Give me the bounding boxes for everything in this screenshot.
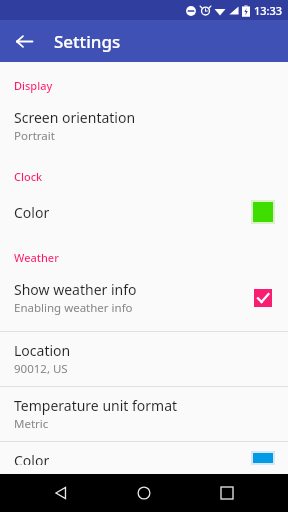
button[interactable]: Temperature unit format xyxy=(0,387,288,441)
staticText: Settings xyxy=(54,30,121,53)
staticText: Enabling weather info xyxy=(14,300,133,316)
button[interactable]: Navigate up xyxy=(8,25,40,57)
button[interactable]: Color xyxy=(0,190,288,234)
staticText: 13:33 xyxy=(254,3,283,18)
button[interactable]: Home xyxy=(122,474,166,512)
staticText: Show weather info xyxy=(14,280,137,299)
staticText: Metric xyxy=(14,416,49,432)
staticText: Clock xyxy=(14,169,43,184)
staticText: Screen orientation xyxy=(14,108,136,127)
button[interactable]: Show weather info checkbox xyxy=(250,285,276,311)
button[interactable]: Clock color xyxy=(250,199,276,225)
staticText: Temperature unit format xyxy=(14,396,178,415)
staticText: Color xyxy=(14,451,50,465)
staticText: 90012, US xyxy=(14,361,68,377)
staticText: Location xyxy=(14,341,71,360)
button[interactable]: Show weather info xyxy=(0,271,288,325)
staticText: Color xyxy=(14,203,50,222)
staticText: Portrait xyxy=(14,128,55,144)
staticText: Weather xyxy=(14,250,59,265)
staticText: Display xyxy=(14,78,53,93)
button[interactable]: Screen orientation xyxy=(0,99,288,153)
button[interactable]: Back xyxy=(39,474,83,512)
button[interactable]: Weather color xyxy=(250,451,276,465)
button[interactable]: Recent apps xyxy=(205,474,249,512)
button[interactable]: Location xyxy=(0,332,288,386)
button[interactable]: Color xyxy=(0,442,288,474)
